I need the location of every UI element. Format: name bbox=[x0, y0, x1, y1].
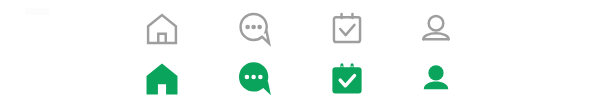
button[interactable]: Home selected bbox=[145, 62, 179, 96]
button[interactable]: Chat selected bbox=[238, 62, 272, 96]
button[interactable]: Home bbox=[145, 12, 179, 46]
button[interactable]: Profile bbox=[419, 12, 453, 46]
button[interactable]: Profile selected bbox=[419, 62, 453, 96]
button[interactable]: Tasks bbox=[330, 12, 364, 46]
button[interactable]: Tasks selected bbox=[330, 62, 364, 96]
button[interactable]: Chat bbox=[238, 12, 272, 46]
